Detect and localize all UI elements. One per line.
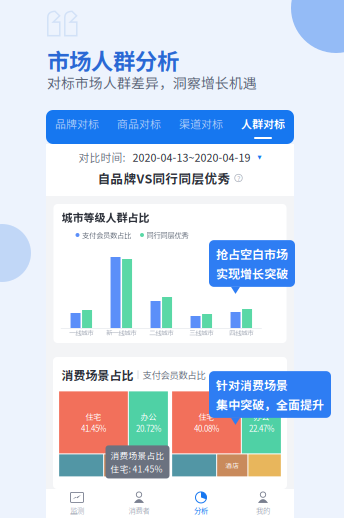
staticText: 办公 — [253, 411, 269, 422]
staticText: 同行同层优秀 — [146, 230, 188, 240]
staticText: 对比时间: — [78, 149, 125, 165]
staticText: 消费者 — [128, 505, 149, 515]
staticText: ? — [237, 173, 240, 183]
staticText: 集中突破，全面提升 — [216, 395, 324, 413]
staticText: 自品牌VS同行同层优秀 — [97, 169, 230, 187]
staticText: 住宅 — [85, 411, 101, 422]
staticText: 22.47% — [249, 422, 274, 434]
staticText: 三线城市 — [189, 328, 213, 337]
button[interactable]: 品牌对标 — [46, 110, 108, 144]
staticText: 支付会员数占比 — [142, 368, 205, 381]
button[interactable]: 我的 — [232, 489, 294, 518]
staticText: 二线城市 — [149, 328, 173, 337]
staticText: 市场人群分析 — [47, 44, 179, 76]
staticText: 40.08% — [194, 422, 219, 434]
staticText: ▾ — [257, 152, 261, 162]
button[interactable]: 监测 — [46, 489, 108, 518]
staticText: 酒店 — [225, 460, 239, 470]
staticText: 商品对标 — [117, 116, 161, 131]
staticText: 20.72% — [136, 422, 161, 434]
staticText: 抢占空白市场 — [216, 245, 288, 262]
staticText: 实现增长突破 — [216, 264, 288, 282]
staticText: 住宅: 41.45% — [110, 462, 162, 475]
button[interactable]: 人群对标 — [232, 110, 294, 144]
staticText: 我的 — [256, 505, 270, 515]
staticText: 41.45% — [81, 422, 106, 434]
button[interactable]: 渠道对标 — [170, 110, 232, 144]
staticText: 监测 — [70, 505, 84, 515]
staticText: 一线城市 — [69, 328, 93, 337]
staticText: 四线城市 — [229, 328, 253, 337]
staticText: 2020-04-13~2020-04-19 — [132, 149, 250, 165]
staticText: 对标市场人群差异，洞察增长机遇 — [47, 73, 257, 92]
staticText: 渠道对标 — [179, 116, 223, 131]
staticText: 针对消费场景 — [216, 376, 288, 393]
staticText: 住宅 — [198, 411, 214, 422]
button[interactable]: 商品对标 — [108, 110, 170, 144]
button[interactable]: 分析 — [170, 489, 232, 518]
staticText: 酒店 — [112, 460, 126, 470]
staticText: 人群对标 — [241, 116, 285, 131]
staticText: 分析 — [194, 505, 208, 515]
staticText: 品牌对标 — [55, 116, 99, 131]
staticText: 办公 — [140, 411, 156, 422]
staticText: 城市等级人群占比 — [61, 209, 149, 225]
staticText: 新一线城市 — [106, 328, 136, 337]
staticText: 消费场景占比 — [61, 366, 133, 383]
button[interactable]: 消费者 — [108, 489, 170, 518]
staticText: 消费场景占比 — [110, 449, 164, 461]
staticText: 支付会员数占比 — [82, 230, 131, 240]
